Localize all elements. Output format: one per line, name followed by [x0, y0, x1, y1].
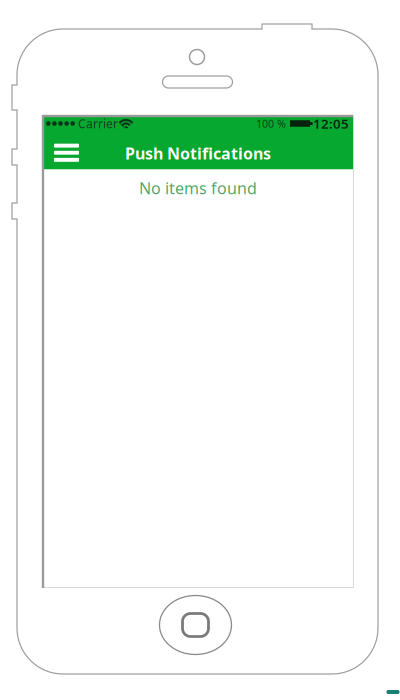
staticText: 100 %	[256, 116, 286, 131]
staticText: Push Notifications	[125, 143, 271, 164]
staticText: 12:05	[313, 115, 349, 132]
button[interactable]: Menu	[42, 134, 85, 171]
staticText: Carrier	[78, 115, 118, 131]
staticText: No items found	[139, 177, 257, 199]
